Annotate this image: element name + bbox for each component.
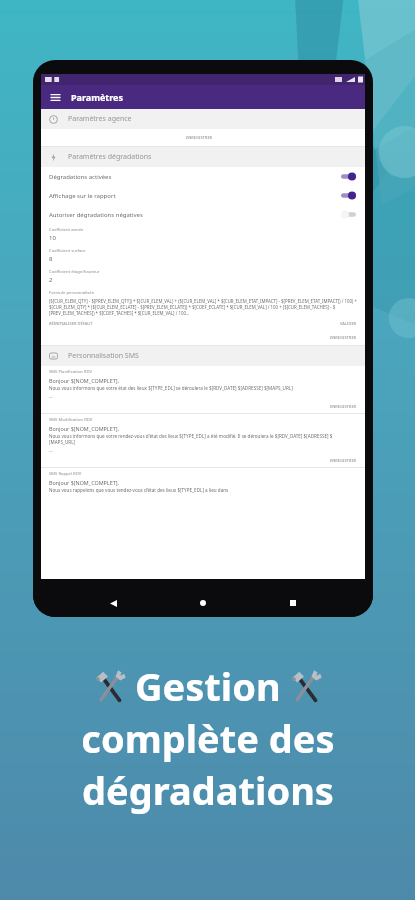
button[interactable]: Autoriser dégradations négatives xyxy=(41,205,365,224)
staticText: Bonjour $[NOM_COMPLET], xyxy=(49,377,119,384)
staticText: ENREGISTRER xyxy=(330,404,357,409)
button[interactable]: VALIDER xyxy=(340,321,357,326)
button[interactable]: Back xyxy=(103,593,123,613)
button[interactable]: Paramètres dégradations xyxy=(41,147,365,167)
button[interactable]: Coefficient étage/hauteur xyxy=(41,266,365,287)
staticText: Paramètres dégradations xyxy=(68,152,152,162)
staticText: Nous vous informons que votre état des l… xyxy=(49,385,293,391)
staticText: complète des xyxy=(81,712,335,764)
staticText: Paramètres agence xyxy=(68,114,132,124)
staticText: Affichage sur le rapport xyxy=(49,192,116,200)
button[interactable]: Coefficient année xyxy=(41,224,365,245)
button[interactable]: Menu xyxy=(48,90,62,104)
staticText: ENREGISTRER xyxy=(330,458,357,463)
button[interactable]: ENREGISTRER xyxy=(330,458,357,463)
staticText: Nous vous rappelons que vous tendez-vous… xyxy=(49,487,229,493)
button[interactable]: Personnalisation SMS xyxy=(41,346,365,366)
staticText: ... xyxy=(49,393,53,399)
staticText: Bonjour $[NOM_COMPLET], xyxy=(49,479,119,486)
staticText: Coefficient étage/hauteur xyxy=(49,269,100,275)
button[interactable]: ENREGISTRER xyxy=(186,135,213,140)
staticText: SMS Rappel RDV xyxy=(49,471,82,477)
staticText: ($[CUR_ELEM_QTY] - $[PREV_ELEM_QTY]) * $… xyxy=(49,298,358,316)
staticText: SMS Planification RDV xyxy=(49,369,92,375)
staticText: Formule personnalisée xyxy=(49,290,95,296)
staticText: Nous vous informons que votre rendez-vou… xyxy=(49,433,358,445)
staticText: 8 xyxy=(49,255,53,263)
button[interactable]: Affichage sur le rapport xyxy=(41,186,365,205)
staticText: Paramètres xyxy=(71,91,124,103)
button[interactable]: Home xyxy=(193,593,213,613)
button[interactable]: ENREGISTRER xyxy=(330,335,357,340)
staticText: Coefficient surface xyxy=(49,248,86,254)
staticText: ENREGISTRER xyxy=(186,135,213,140)
staticText: ... xyxy=(49,447,53,453)
staticText: RÉINITIALISER DÉFAUT xyxy=(49,321,93,326)
staticText: ENREGISTRER xyxy=(330,335,357,340)
staticText: 2 xyxy=(49,276,53,284)
staticText: Autoriser dégradations négatives xyxy=(49,211,143,219)
button[interactable]: ENREGISTRER xyxy=(330,404,357,409)
staticText: Bonjour $[NOM_COMPLET], xyxy=(49,425,119,432)
staticText: Gestion xyxy=(135,660,281,712)
staticText: dégradations xyxy=(82,764,334,816)
staticText: Dégradations activées xyxy=(49,173,112,181)
staticText: Personnalisation SMS xyxy=(68,351,139,361)
button[interactable]: Coefficient surface xyxy=(41,245,365,266)
button[interactable]: Recents xyxy=(283,593,303,613)
staticText: Coefficient année xyxy=(49,227,84,233)
staticText: SMS Modification RDV xyxy=(49,417,93,423)
staticText: 10 xyxy=(49,234,56,242)
button[interactable]: Paramètres agence xyxy=(41,109,365,129)
button[interactable]: Dégradations activées xyxy=(41,167,365,186)
staticText: VALIDER xyxy=(340,321,357,326)
